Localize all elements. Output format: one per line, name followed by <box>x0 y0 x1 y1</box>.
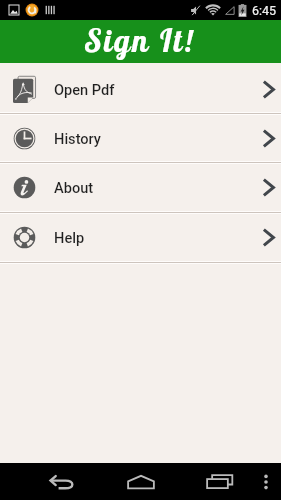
button[interactable]: Home <box>117 463 165 500</box>
button[interactable]: More options <box>246 463 281 500</box>
staticText: Help <box>54 229 85 246</box>
button[interactable]: History <box>0 115 281 164</box>
staticText: 6:45 <box>252 3 277 18</box>
staticText: About <box>54 179 94 196</box>
button[interactable]: Recent apps <box>196 463 244 500</box>
staticText: History <box>54 130 101 147</box>
button[interactable]: Back <box>39 463 87 500</box>
button[interactable]: Open Pdf <box>0 66 281 115</box>
button[interactable]: About <box>0 164 281 214</box>
button[interactable]: Help <box>0 214 281 264</box>
staticText: Sign It! <box>85 21 196 60</box>
staticText: Open Pdf <box>54 81 115 98</box>
